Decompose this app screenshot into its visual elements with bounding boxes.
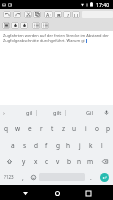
button[interactable]: Italic (63, 11, 71, 18)
staticText: › (3, 109, 5, 117)
button[interactable]: l (96, 137, 107, 153)
button[interactable]: p (102, 120, 113, 137)
staticText: m (87, 157, 94, 166)
button[interactable]: Recents (81, 186, 95, 200)
staticText: a (11, 141, 15, 150)
button[interactable]: b (63, 153, 74, 169)
staticText: h (66, 141, 71, 150)
staticText: s (23, 141, 27, 150)
staticText: 17:40 (96, 1, 110, 8)
button[interactable]: x (30, 153, 41, 169)
staticText: d (34, 141, 38, 150)
staticText: t (51, 124, 54, 133)
staticText: u (72, 124, 77, 133)
staticText: n (77, 157, 82, 166)
button[interactable]: w (12, 120, 24, 137)
button[interactable]: Select all (2, 22, 10, 29)
button[interactable]: Text size (44, 11, 53, 18)
button[interactable]: Undo (3, 11, 11, 18)
staticText: . (90, 173, 92, 182)
button[interactable]: Bullet list (32, 22, 40, 29)
staticText: v (56, 157, 60, 166)
staticText: k (89, 141, 93, 150)
staticText: o (95, 124, 99, 133)
button[interactable]: e (24, 120, 36, 137)
button[interactable]: Voice input (99, 105, 113, 120)
button[interactable]: Back (18, 186, 32, 200)
button[interactable]: k (85, 137, 96, 153)
staticText: ?123 (4, 174, 14, 180)
staticText: , (22, 173, 24, 182)
staticText: y (22, 157, 26, 166)
button[interactable]: Shift (0, 153, 18, 169)
button[interactable]: f (41, 137, 52, 153)
button[interactable]: . (86, 169, 96, 185)
button[interactable]: c (41, 153, 52, 169)
button[interactable]: y (18, 153, 30, 169)
button[interactable]: Backspace (96, 153, 113, 169)
button[interactable]: Highlight colour (20, 22, 28, 29)
button[interactable]: Bold (54, 11, 62, 18)
button[interactable]: t (47, 120, 58, 137)
button[interactable]: Numbered list (41, 22, 49, 29)
staticText: Gil (86, 109, 93, 116)
button[interactable]: Cut (24, 11, 32, 18)
button[interactable]: z (58, 120, 69, 137)
staticText: c (45, 157, 49, 166)
staticText: g (56, 141, 60, 150)
staticText: z (62, 124, 66, 133)
staticText: U (74, 12, 79, 17)
button[interactable]: d (30, 137, 41, 153)
button[interactable]: n (74, 153, 85, 169)
button[interactable]: q (0, 120, 12, 137)
staticText: i (85, 124, 87, 133)
staticText: f (45, 141, 48, 150)
staticText: gil (26, 109, 33, 116)
staticText: p (106, 124, 110, 133)
button[interactable]: s (19, 137, 30, 153)
staticText: r (40, 124, 43, 133)
button[interactable]: g (52, 137, 63, 153)
staticText: x (34, 157, 38, 166)
button[interactable]: a (7, 137, 19, 153)
button[interactable]: Emoji (28, 169, 38, 185)
button[interactable]: ?123 (0, 169, 17, 185)
button[interactable]: u (69, 120, 80, 137)
staticText: e (28, 124, 32, 133)
button[interactable]: More suggestions (0, 105, 7, 120)
staticText: I (67, 12, 69, 17)
button[interactable]: j (74, 137, 85, 153)
button[interactable]: Copy (33, 11, 41, 18)
staticText: q (4, 124, 8, 133)
button[interactable]: gil (22, 105, 36, 120)
staticText: Zugfolgeabschnitte durchgeführt. Warum g… (3, 38, 85, 43)
button[interactable]: Gil (82, 105, 96, 120)
button[interactable]: gilt (50, 105, 65, 120)
staticText: B (57, 12, 61, 17)
button[interactable]: r (36, 120, 47, 137)
button[interactable]: i (80, 120, 91, 137)
staticText: gilt (53, 109, 62, 116)
button[interactable]: m (85, 153, 96, 169)
button[interactable]: Enter (96, 169, 113, 185)
button[interactable]: , (17, 169, 28, 185)
button[interactable]: Underline (72, 11, 80, 18)
staticText: l (101, 141, 103, 150)
staticText: b (67, 157, 71, 166)
button[interactable]: Redo (13, 11, 21, 18)
staticText: j (79, 141, 81, 150)
button[interactable]: o (91, 120, 102, 137)
staticText: A (46, 12, 50, 17)
button[interactable]: Text colour (11, 22, 19, 29)
button[interactable]: v (52, 153, 63, 169)
staticText: w (15, 124, 21, 133)
button[interactable]: h (63, 137, 74, 153)
staticText: Zugfahrten werden auf der freien Strecke… (3, 33, 109, 38)
button[interactable]: Home (50, 186, 64, 200)
